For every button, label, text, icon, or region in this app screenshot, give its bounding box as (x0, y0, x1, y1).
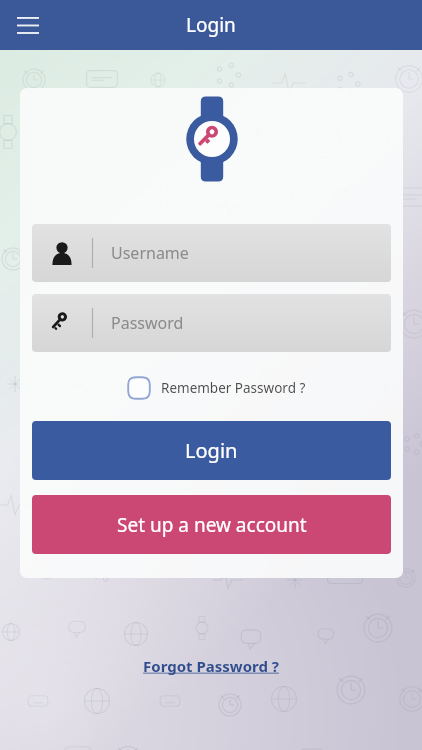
button[interactable]: Forgot Password ? (133, 650, 289, 682)
staticText: Username (111, 242, 189, 264)
button[interactable]: Set up a new account (32, 495, 391, 554)
staticText: Password (111, 312, 184, 334)
button[interactable]: Login (32, 421, 391, 480)
staticText: Login (186, 12, 236, 38)
button[interactable]: Password (32, 294, 391, 352)
staticText: Set up a new account (117, 512, 307, 538)
button[interactable]: Username (32, 224, 391, 282)
button[interactable]: Remember Password ? (127, 376, 306, 400)
staticText: Forgot Password ? (143, 656, 279, 676)
button[interactable]: Open navigation menu (8, 5, 48, 45)
staticText: Remember Password ? (161, 379, 306, 397)
staticText: Login (185, 437, 238, 464)
